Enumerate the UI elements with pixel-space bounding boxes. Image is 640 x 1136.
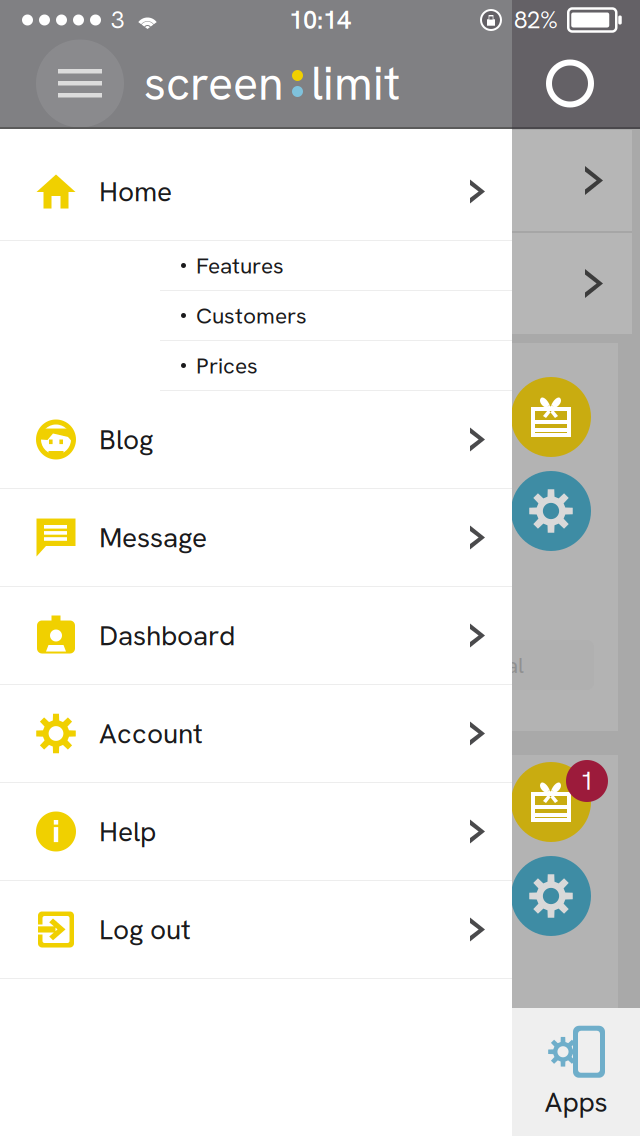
staticText: Help <box>99 813 156 850</box>
staticText: Prices <box>196 351 258 380</box>
staticText: Log out <box>99 911 191 948</box>
button[interactable]: Home <box>0 127 512 240</box>
staticText: screen <box>144 53 284 114</box>
staticText: Apps <box>544 1084 607 1120</box>
staticText: Dashboard <box>99 617 235 654</box>
button[interactable]: Prices <box>0 341 512 390</box>
button[interactable]: Customers <box>0 291 512 340</box>
button[interactable]: Account <box>0 685 512 782</box>
staticText: Home <box>99 173 172 210</box>
button[interactable]: Help <box>0 783 512 880</box>
staticText: Customers <box>196 301 307 330</box>
staticText: al <box>506 650 524 680</box>
button[interactable]: Blog <box>0 391 512 488</box>
staticText: Blog <box>99 421 153 458</box>
button[interactable]: Record <box>536 49 604 117</box>
button[interactable]: Log out <box>0 881 512 978</box>
staticText: Account <box>99 715 203 752</box>
staticText: 82% <box>514 4 558 36</box>
button[interactable]: Open menu <box>36 39 124 127</box>
staticText: Features <box>196 251 284 280</box>
button[interactable]: Apps <box>512 1008 640 1136</box>
button[interactable]: Features <box>0 241 512 290</box>
button[interactable]: Dashboard <box>0 587 512 684</box>
staticText: limit <box>311 53 400 114</box>
button[interactable]: Message <box>0 489 512 586</box>
staticText: 10:14 <box>289 3 351 36</box>
staticText: 3 <box>111 4 124 36</box>
staticText: Message <box>99 519 207 556</box>
staticText: 1 <box>580 764 594 797</box>
